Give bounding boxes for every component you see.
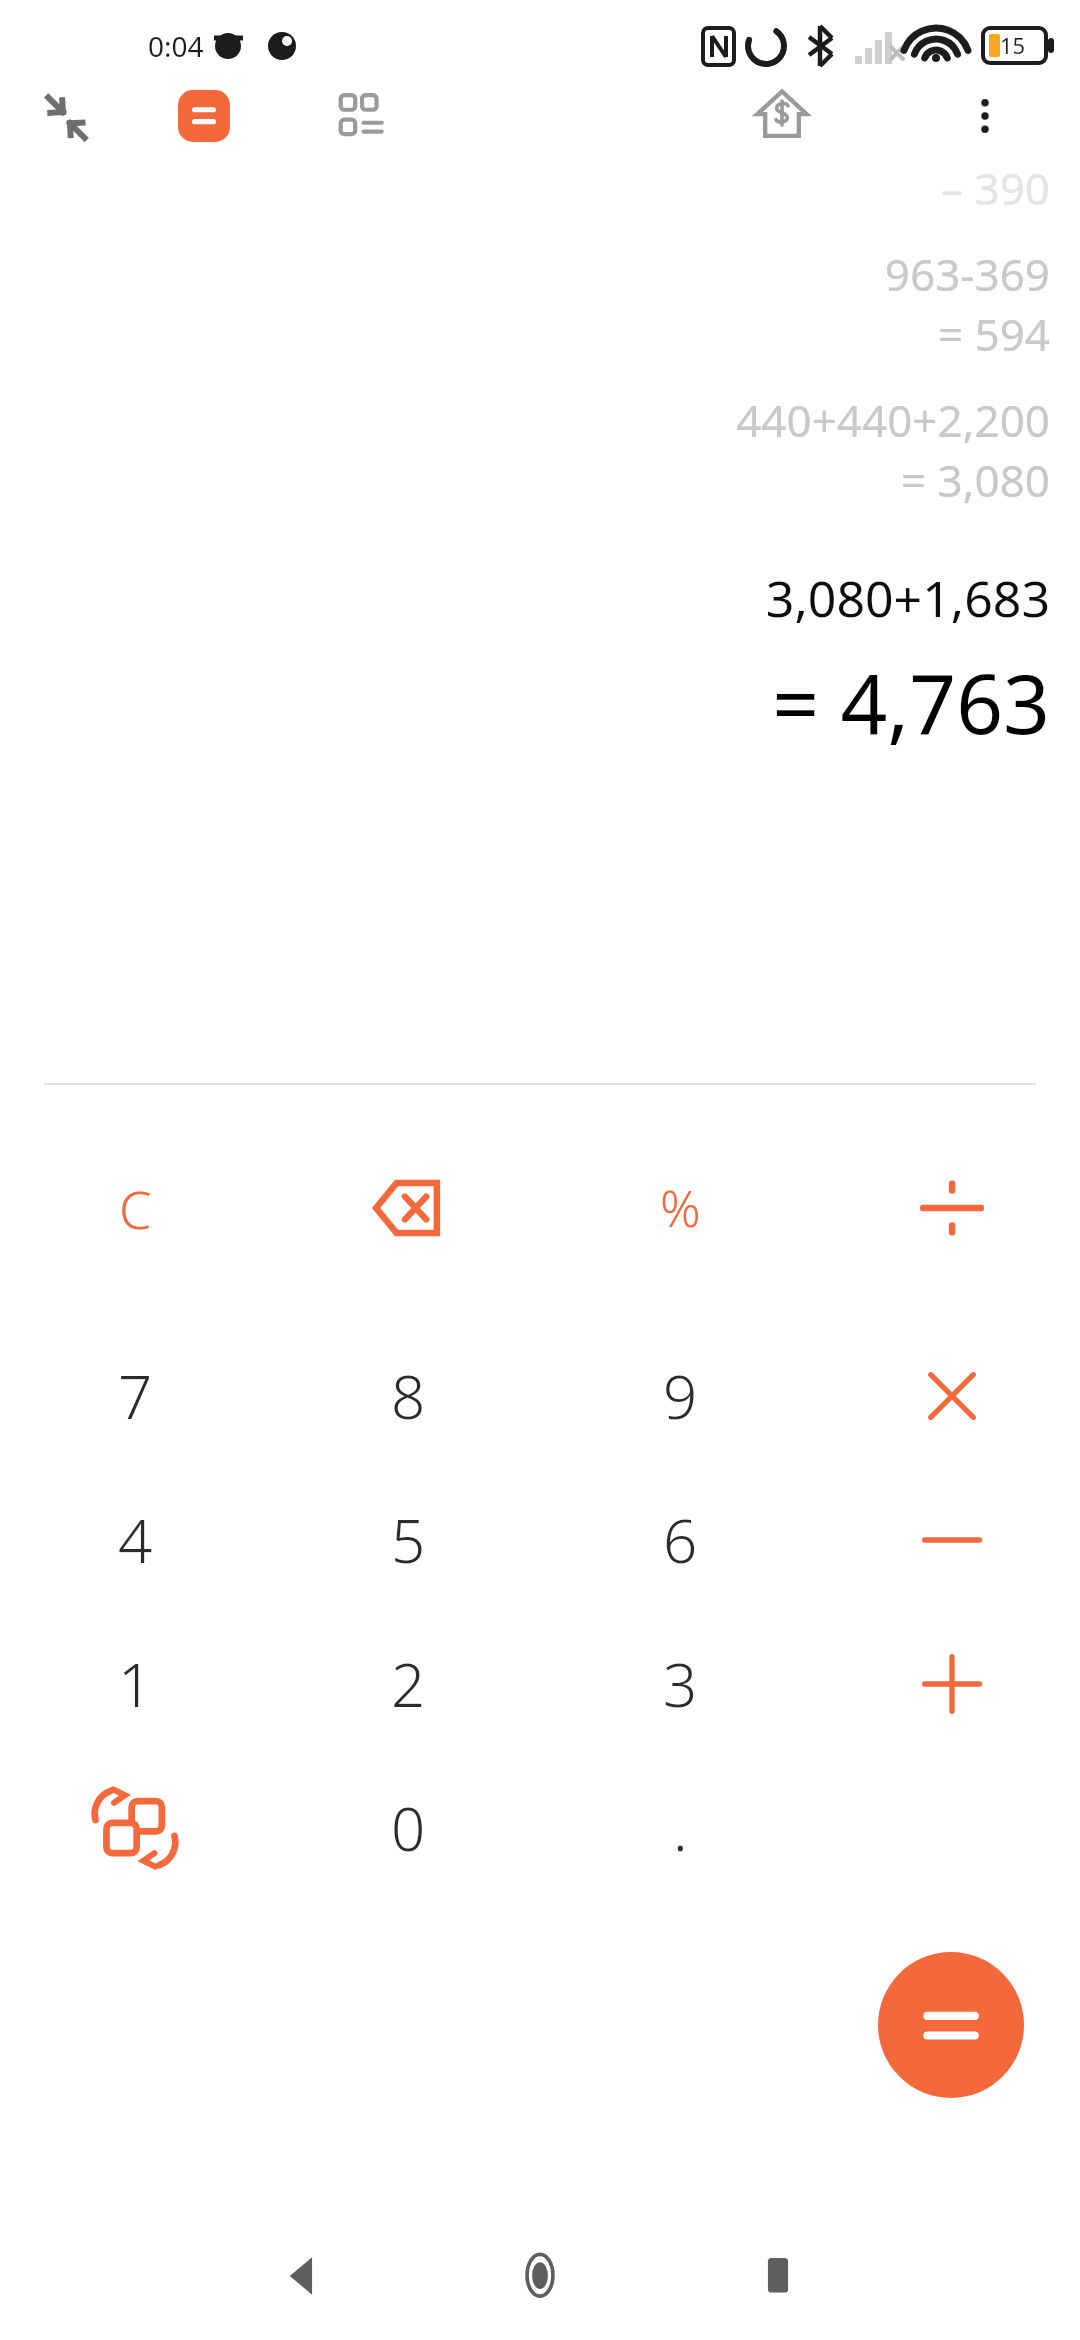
button[interactable]: 7: [45, 1306, 225, 1486]
staticText: 2: [391, 1643, 426, 1725]
staticText: 0:04: [148, 27, 204, 65]
button[interactable]: 8: [318, 1306, 498, 1486]
button[interactable]: C: [45, 1118, 225, 1298]
button[interactable]: 3: [590, 1594, 770, 1774]
staticText: = 3,080: [900, 450, 1050, 510]
staticText: C: [119, 1173, 152, 1244]
button[interactable]: 4: [45, 1450, 225, 1630]
button[interactable]: Home: [504, 2240, 576, 2312]
button[interactable]: Backspace: [318, 1118, 498, 1298]
button[interactable]: Calculator: [178, 90, 230, 142]
button[interactable]: 2: [318, 1594, 498, 1774]
button[interactable]: Plus: [862, 1594, 1042, 1774]
staticText: 440+440+2,200: [736, 390, 1050, 450]
button[interactable]: .: [590, 1738, 770, 1918]
staticText: 5: [391, 1499, 426, 1581]
staticText: 6: [663, 1499, 698, 1581]
button[interactable]: More options: [955, 86, 1015, 146]
button[interactable]: Convert: [45, 1738, 225, 1918]
button[interactable]: Minus: [862, 1450, 1042, 1630]
staticText: .: [673, 1787, 688, 1869]
staticText: 3,080+1,683: [765, 564, 1050, 632]
staticText: 1: [118, 1643, 153, 1725]
button[interactable]: Multiply: [862, 1306, 1042, 1486]
staticText: = 4,763: [772, 646, 1050, 758]
button[interactable]: 0: [318, 1738, 498, 1918]
button[interactable]: Divide: [862, 1118, 1042, 1298]
staticText: = 594: [937, 304, 1050, 364]
staticText: 4: [118, 1499, 153, 1581]
staticText: 3: [663, 1643, 698, 1725]
staticText: %: [660, 1174, 701, 1242]
staticText: 8: [391, 1355, 426, 1437]
button[interactable]: Collapse: [30, 82, 100, 152]
button[interactable]: Recents: [742, 2240, 814, 2312]
staticText: 963-369: [884, 244, 1050, 304]
button[interactable]: Equals: [878, 1952, 1024, 2098]
button[interactable]: 5: [318, 1450, 498, 1630]
button[interactable]: 9: [590, 1306, 770, 1486]
staticText: – 390: [941, 158, 1050, 218]
staticText: 15: [1000, 30, 1026, 60]
button[interactable]: 6: [590, 1450, 770, 1630]
button[interactable]: Mortgage: [752, 86, 812, 146]
button[interactable]: Back: [266, 2240, 338, 2312]
button[interactable]: %: [590, 1118, 770, 1298]
staticText: 9: [663, 1355, 698, 1437]
button[interactable]: Unit converter: [336, 90, 388, 142]
button[interactable]: 1: [45, 1594, 225, 1774]
staticText: 7: [118, 1355, 153, 1437]
staticText: 0: [391, 1787, 426, 1869]
